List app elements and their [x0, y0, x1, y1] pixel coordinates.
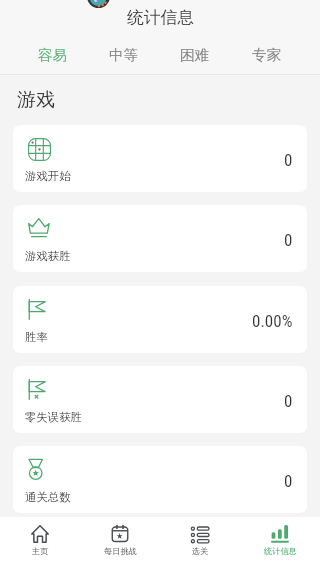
- staticText: 每日挑战: [104, 546, 137, 556]
- staticText: 游戏获胜: [25, 249, 71, 263]
- staticText: 0.00%: [252, 311, 293, 331]
- staticText: 统计信息: [127, 7, 195, 28]
- button[interactable]: 零失误获胜: [13, 366, 307, 433]
- button[interactable]: 通关总数: [13, 446, 307, 513]
- staticText: 中等: [109, 46, 139, 64]
- staticText: 主页: [32, 546, 49, 556]
- staticText: 困难: [180, 46, 210, 64]
- button[interactable]: 胜率: [13, 286, 307, 353]
- staticText: 容易: [38, 46, 68, 64]
- button[interactable]: 容易: [17, 33, 88, 77]
- staticText: 0: [284, 150, 293, 170]
- staticText: 选关: [192, 546, 209, 556]
- button[interactable]: 主页: [0, 517, 80, 569]
- button[interactable]: 每日挑战: [80, 517, 160, 569]
- staticText: 通关总数: [25, 490, 71, 504]
- staticText: 胜率: [25, 330, 48, 344]
- button[interactable]: 统计信息: [240, 517, 320, 569]
- button[interactable]: 困难: [159, 33, 231, 77]
- staticText: 0: [284, 230, 293, 250]
- button[interactable]: 选关: [160, 517, 240, 569]
- staticText: 游戏开始: [25, 169, 71, 183]
- staticText: 专家: [252, 46, 282, 64]
- button[interactable]: 中等: [88, 33, 159, 77]
- button[interactable]: 游戏开始: [13, 125, 307, 192]
- staticText: 0: [284, 391, 293, 411]
- staticText: 零失误获胜: [25, 410, 82, 424]
- staticText: 游戏: [17, 88, 55, 112]
- staticText: 统计信息: [264, 546, 297, 556]
- staticText: 0: [284, 471, 293, 491]
- button[interactable]: 游戏获胜: [13, 205, 307, 272]
- button[interactable]: 专家: [231, 33, 303, 77]
